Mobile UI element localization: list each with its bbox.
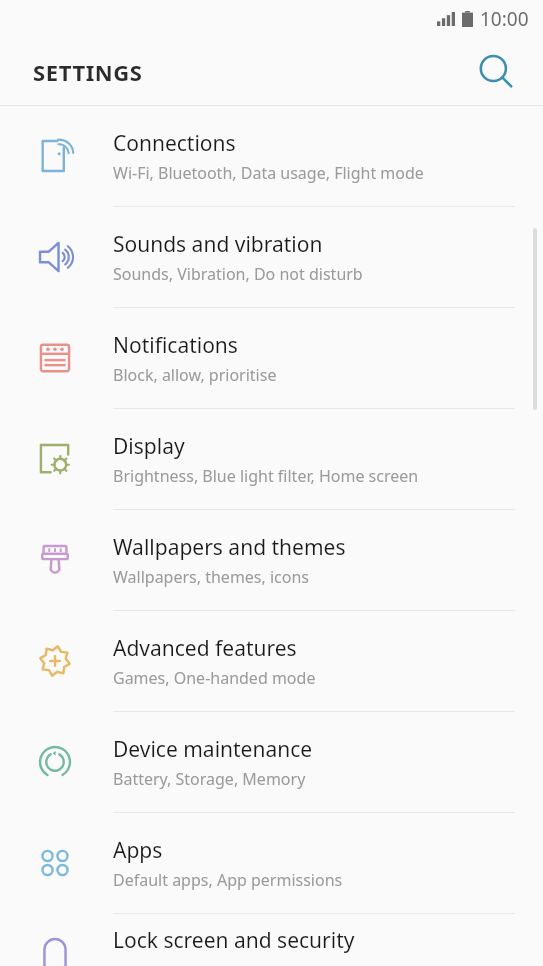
button[interactable]: Apps bbox=[0, 813, 543, 913]
staticText: SETTINGS bbox=[33, 57, 143, 87]
staticText: Device maintenance bbox=[113, 735, 313, 764]
staticText: Sounds and vibration bbox=[113, 230, 323, 259]
staticText: Lock screen and security bbox=[113, 926, 355, 955]
button[interactable]: Display bbox=[0, 409, 543, 509]
staticText: Block, allow, prioritise bbox=[113, 364, 277, 386]
staticText: Battery, Storage, Memory bbox=[113, 768, 306, 790]
staticText: Wallpapers and themes bbox=[113, 533, 346, 562]
button[interactable]: Sounds and vibration bbox=[0, 207, 543, 307]
button[interactable]: Device maintenance bbox=[0, 712, 543, 812]
staticText: Wallpapers, themes, icons bbox=[113, 566, 310, 588]
button[interactable]: Lock screen and security bbox=[0, 914, 543, 966]
button[interactable]: Notifications bbox=[0, 308, 543, 408]
staticText: Apps bbox=[113, 836, 163, 865]
staticText: Advanced features bbox=[113, 634, 297, 663]
staticText: Wi-Fi, Bluetooth, Data usage, Flight mod… bbox=[113, 162, 424, 184]
staticText: Brightness, Blue light filter, Home scre… bbox=[113, 465, 419, 487]
button[interactable]: Advanced features bbox=[0, 611, 543, 711]
button[interactable]: Connections bbox=[0, 106, 543, 206]
staticText: Connections bbox=[113, 129, 236, 158]
staticText: Display bbox=[113, 432, 185, 461]
staticText: Notifications bbox=[113, 331, 238, 360]
staticText: Default apps, App permissions bbox=[113, 869, 343, 891]
button[interactable]: Search bbox=[474, 50, 518, 94]
button[interactable]: Wallpapers and themes bbox=[0, 510, 543, 610]
staticText: Sounds, Vibration, Do not disturb bbox=[113, 263, 363, 285]
staticText: 10:00 bbox=[480, 6, 529, 32]
staticText: Games, One-handed mode bbox=[113, 667, 316, 689]
